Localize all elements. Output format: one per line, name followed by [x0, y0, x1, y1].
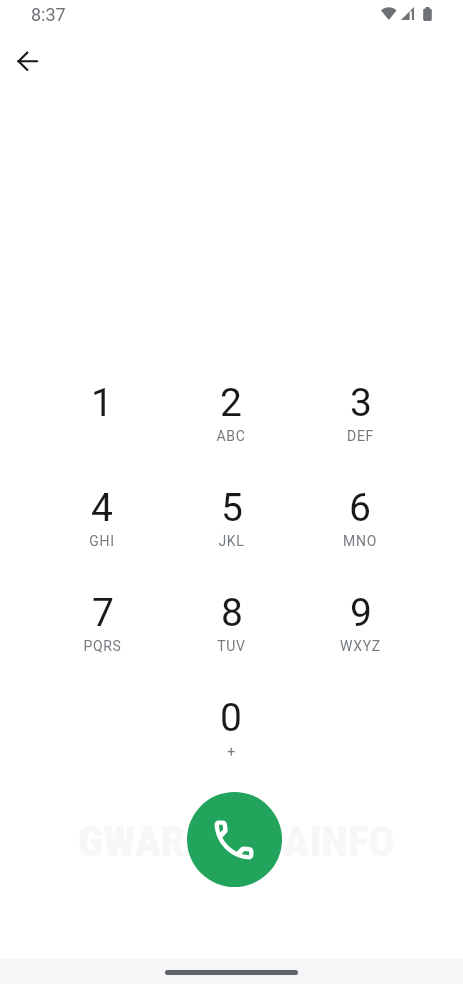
staticText: 8:37	[31, 4, 66, 25]
staticText: DEF	[347, 428, 374, 444]
staticText: 6	[349, 485, 371, 531]
button[interactable]: 6	[308, 485, 412, 569]
staticText: 0	[220, 695, 242, 741]
staticText: +	[227, 744, 236, 760]
staticText: ABC	[216, 428, 246, 444]
staticText: MNO	[343, 533, 377, 549]
button[interactable]: 9	[308, 590, 412, 674]
button[interactable]: 4	[50, 485, 154, 569]
staticText: 1	[91, 380, 113, 426]
staticText: WXYZ	[340, 638, 381, 654]
staticText: JKL	[218, 533, 245, 549]
staticText: 5	[221, 485, 243, 531]
button[interactable]: 8	[179, 590, 283, 674]
button[interactable]: 5	[179, 485, 283, 569]
staticText: GHI	[89, 533, 115, 549]
button[interactable]: 0	[179, 695, 283, 779]
staticText: 2	[220, 380, 242, 426]
staticText: 9	[350, 590, 372, 636]
button[interactable]: 3	[308, 380, 412, 464]
button[interactable]: 1	[50, 380, 154, 464]
staticText: PQRS	[83, 638, 122, 654]
staticText: 4	[91, 485, 113, 531]
button[interactable]: Back	[4, 37, 52, 85]
button[interactable]: 7	[50, 590, 154, 674]
button[interactable]: Call	[187, 792, 282, 887]
staticText: 8	[221, 590, 243, 636]
staticText: 7	[92, 590, 114, 636]
staticText: GWARANCJAINFO	[78, 816, 395, 866]
staticText: 3	[350, 380, 372, 426]
staticText: TUV	[217, 638, 246, 654]
button[interactable]: 2	[179, 380, 283, 464]
